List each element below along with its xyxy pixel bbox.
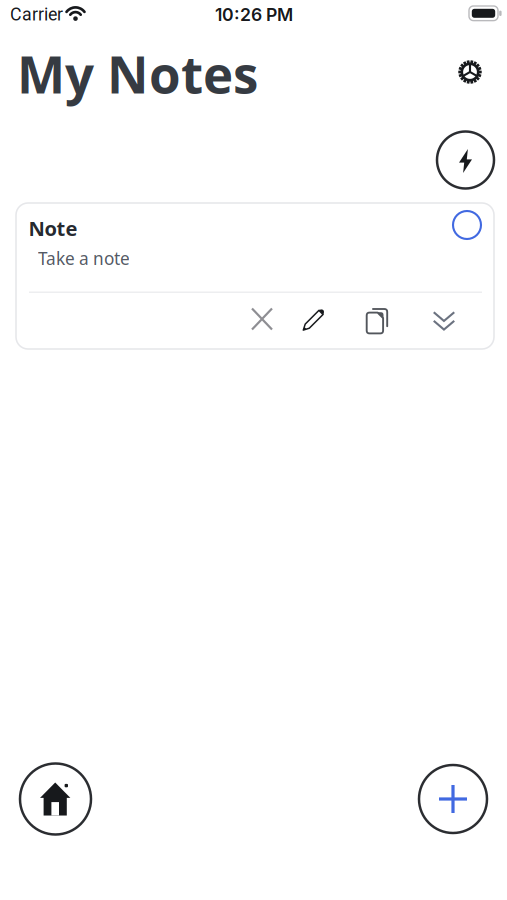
button[interactable]: Settings [450, 52, 490, 92]
button[interactable]: Edit [296, 302, 332, 338]
staticText: Carrier [10, 4, 63, 25]
button[interactable]: Collapse [426, 303, 462, 339]
button[interactable]: Home [20, 763, 91, 834]
staticText: Note [28, 214, 77, 242]
button[interactable]: Delete [244, 301, 280, 337]
button[interactable]: Select note [453, 211, 481, 239]
button[interactable]: Quick note [437, 131, 494, 188]
staticText: 10:26 PM [215, 4, 293, 25]
staticText: Take a note [38, 245, 130, 270]
staticText: My Notes [17, 39, 258, 108]
button[interactable]: Copy [359, 303, 395, 339]
button[interactable]: Add note [419, 765, 487, 833]
